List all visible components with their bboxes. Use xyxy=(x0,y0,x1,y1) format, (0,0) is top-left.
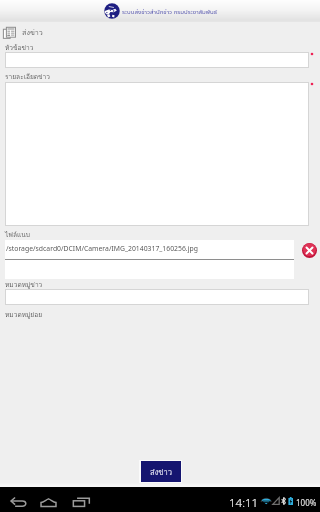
staticText: หมวดหมู่ย่อย xyxy=(5,309,43,319)
button[interactable]: Back xyxy=(4,491,32,509)
staticText: ส่งข่าว xyxy=(150,466,173,478)
staticText: /storage/sdcard0/DCIM/Camera/IMG_2014031… xyxy=(6,244,198,253)
button[interactable]: Recent apps xyxy=(67,491,95,509)
button[interactable]: Home xyxy=(34,491,62,509)
staticText: ไฟล์แนบ xyxy=(5,229,30,239)
button[interactable]: Remove attachment xyxy=(301,242,317,258)
button[interactable]: ส่งข่าว xyxy=(0,22,320,42)
button[interactable] xyxy=(5,289,309,305)
button[interactable]: ส่งข่าว xyxy=(138,459,183,484)
staticText: รายละเอียดข่าว xyxy=(5,71,50,81)
staticText: ส่งข่าว xyxy=(22,27,43,38)
button[interactable] xyxy=(5,82,309,226)
staticText: 100% xyxy=(296,497,317,508)
staticText: 14:11 xyxy=(229,495,259,511)
staticText: ระบบส่งข่าวสำนักข่าว กรมประชาสัมพันธ์ xyxy=(122,7,218,15)
staticText: หมวดหมู่ข่าว xyxy=(5,279,43,289)
button[interactable] xyxy=(5,52,309,68)
staticText: หัวข้อข่าว xyxy=(5,42,34,52)
button[interactable]: /storage/sdcard0/DCIM/Camera/IMG_2014031… xyxy=(5,240,294,279)
